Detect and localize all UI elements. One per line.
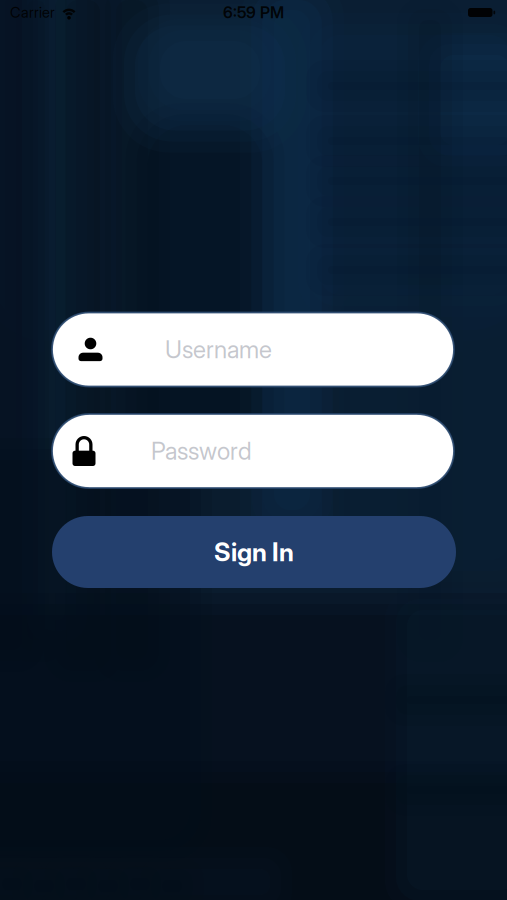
staticText: 6:59 PM [223, 3, 284, 22]
staticText: Password [151, 437, 252, 465]
button[interactable]: Sign In [52, 516, 456, 588]
button[interactable]: Password [52, 414, 454, 488]
staticText: Sign In [214, 537, 294, 567]
staticText: Username [165, 335, 272, 364]
staticText: Carrier [10, 4, 55, 21]
button[interactable]: Username [52, 312, 454, 386]
